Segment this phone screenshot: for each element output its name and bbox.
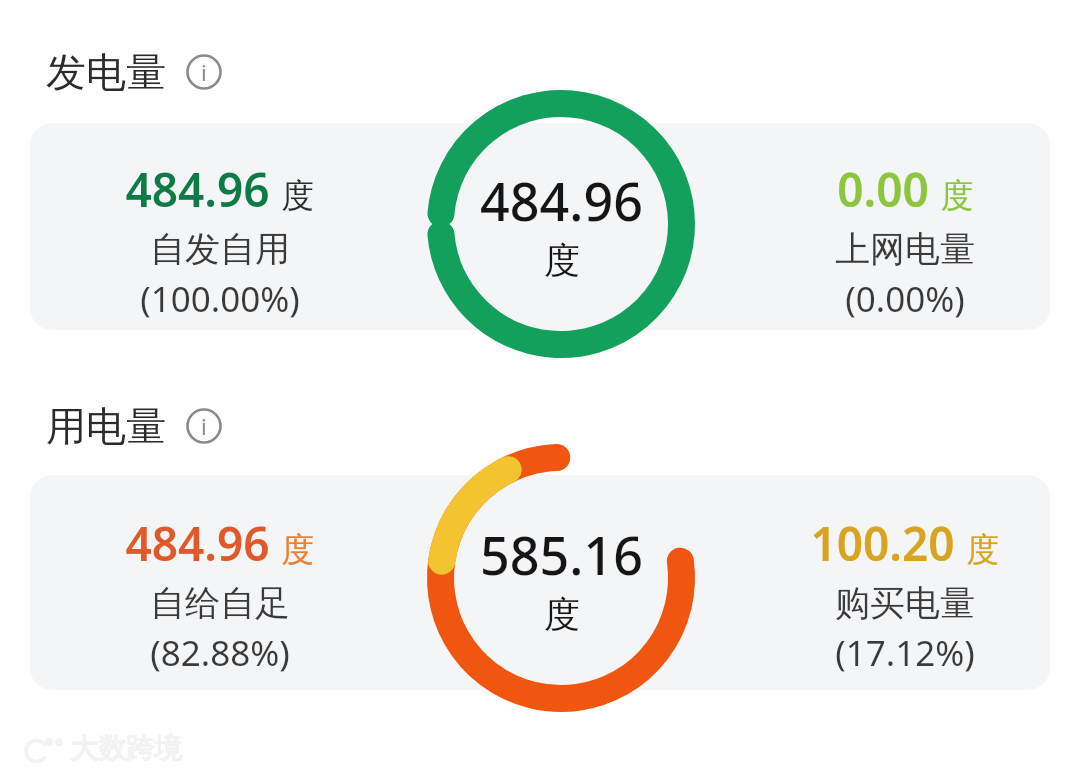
staticText: 484.96 度 (125, 512, 315, 575)
staticText: 100.20 度 (810, 512, 1000, 575)
button[interactable]: 0.00 度 (770, 158, 1040, 323)
other: 发电量 说明 (186, 54, 222, 90)
staticText: 发电量 (46, 47, 166, 97)
staticText: (17.12%) (835, 629, 975, 677)
staticText: i (201, 411, 207, 441)
staticText: 自发自用 (150, 227, 290, 271)
staticText: i (201, 57, 207, 87)
button[interactable]: 484.96 (427, 90, 695, 358)
staticText: 585.16 (480, 519, 643, 590)
staticText: 0.00 度 (837, 158, 974, 221)
staticText: (82.88%) (150, 629, 290, 677)
staticText: 度 (544, 592, 580, 637)
staticText: 484.96 (480, 165, 643, 236)
staticText: 度 (544, 238, 580, 283)
button[interactable]: 用电量 (46, 398, 222, 454)
button[interactable]: 484.96 度 (85, 158, 355, 323)
staticText: (0.00%) (845, 275, 965, 323)
other: 用电量 说明 (186, 408, 222, 444)
button[interactable] (30, 475, 1050, 690)
staticText: 484.96 度 (125, 158, 315, 221)
staticText: 上网电量 (835, 227, 975, 271)
button[interactable]: 100.20 度 (770, 512, 1040, 677)
staticText: 大数跨境 (70, 731, 182, 766)
button[interactable]: 发电量 (46, 44, 222, 100)
staticText: 购买电量 (835, 581, 975, 625)
staticText: 自给自足 (150, 581, 290, 625)
staticText: 用电量 (46, 401, 166, 451)
button[interactable] (30, 123, 1050, 330)
button[interactable]: 484.96 度 (85, 512, 355, 677)
staticText: (100.00%) (140, 275, 300, 323)
button[interactable]: 585.16 (427, 444, 695, 712)
